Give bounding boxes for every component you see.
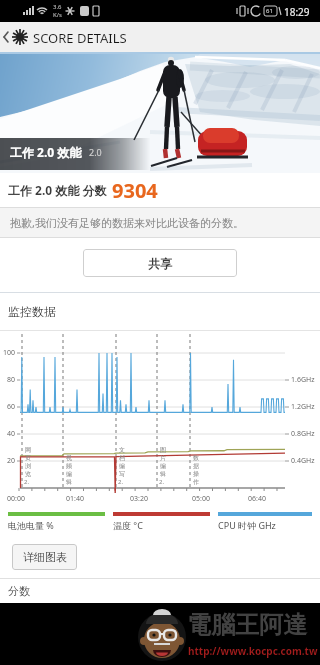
button[interactable]: 共享 <box>83 249 237 277</box>
staticText: 辑 <box>160 470 166 478</box>
staticText: 1.6GHz <box>291 375 315 385</box>
staticText: 文 <box>119 446 125 454</box>
staticText: 图 <box>160 446 166 454</box>
staticText: 据 <box>193 462 199 470</box>
staticText: 操 <box>193 470 199 478</box>
staticText: 20 <box>7 456 16 466</box>
staticText: 01:40 <box>66 494 84 504</box>
staticText: 2.0 <box>118 478 126 486</box>
staticText: 辑 <box>66 478 72 486</box>
staticText: 18:29 <box>284 5 310 19</box>
staticText: 61 <box>266 7 273 15</box>
staticText: 00:00 <box>7 494 25 504</box>
staticText: 電腦王阿達 <box>187 610 307 640</box>
staticText: 03:20 <box>130 494 148 504</box>
staticText: 40 <box>7 429 16 439</box>
staticText: 9304 <box>112 177 158 204</box>
staticText: 06:40 <box>248 494 266 504</box>
staticText: 片 <box>160 454 166 462</box>
staticText: 100 <box>3 348 16 358</box>
staticText: 80 <box>7 375 16 385</box>
staticText: 工作 2.0 效能 <box>10 144 82 160</box>
staticText: 编 <box>66 470 72 478</box>
staticText: 1.2GHz <box>291 402 315 412</box>
staticText: 2.0 <box>24 478 32 486</box>
staticText: 温度 °C <box>113 519 143 531</box>
staticText: 工作 2.0 效能 分数 <box>8 182 107 198</box>
staticText: 编 <box>119 462 125 470</box>
staticText: CPU 时钟 GHz <box>218 519 276 531</box>
staticText: 分数 <box>8 584 30 598</box>
staticText: 频 <box>66 462 72 470</box>
staticText: 页 <box>25 454 31 462</box>
staticText: 抱歉,我们没有足够的数据来对比此设备的分数。 <box>10 215 244 230</box>
staticText: http://www.kocpc.com.tw <box>188 644 318 658</box>
staticText: 作 <box>193 478 199 486</box>
staticText: K/s <box>53 11 62 19</box>
button[interactable]: SCORE DETAILS <box>0 22 320 52</box>
staticText: SCORE DETAILS <box>33 29 127 47</box>
staticText: 05:00 <box>192 494 210 504</box>
staticText: 数 <box>193 454 199 462</box>
staticText: 详细图表 <box>23 550 67 564</box>
staticText: 3.6 <box>53 3 62 11</box>
staticText: 0.8GHz <box>291 429 315 439</box>
staticText: 电池电量 % <box>8 519 54 531</box>
staticText: 网 <box>25 446 31 454</box>
staticText: 浏 <box>25 462 31 470</box>
staticText: 视 <box>66 454 72 462</box>
staticText: 2.0 <box>159 478 167 486</box>
button[interactable]: 详细图表 <box>12 544 77 570</box>
staticText: 60 <box>7 402 16 412</box>
staticText: 档 <box>119 454 125 462</box>
staticText: 0.4GHz <box>291 456 315 466</box>
staticText: 写 <box>119 470 125 478</box>
staticText: 编 <box>160 462 166 470</box>
staticText: 监控数据 <box>8 304 56 319</box>
staticText: 2.0 <box>89 146 102 158</box>
staticText: 共享 <box>148 256 172 271</box>
staticText: 览 <box>25 470 31 478</box>
